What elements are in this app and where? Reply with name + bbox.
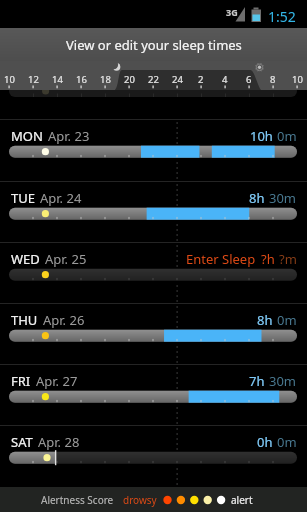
- staticText: WED: [11, 250, 40, 268]
- staticText: ?m: [279, 250, 297, 268]
- staticText: Alertness Score: [41, 493, 114, 507]
- staticText: 20: [124, 73, 135, 86]
- staticText: 7h: [249, 372, 265, 390]
- staticText: 22: [148, 73, 159, 86]
- staticText: 14: [52, 73, 63, 86]
- staticText: Apr. 27: [36, 372, 78, 390]
- staticText: drowsy: [123, 493, 157, 507]
- staticText: 8: [270, 73, 276, 86]
- staticText: 6: [246, 73, 252, 86]
- staticText: 2: [198, 73, 204, 86]
- staticText: 8h: [249, 189, 265, 207]
- staticText: 12: [28, 73, 39, 86]
- button[interactable]: WED: [0, 242, 307, 303]
- button[interactable]: SAT: [0, 425, 307, 486]
- staticText: View or edit your sleep times: [66, 36, 242, 54]
- button[interactable]: TUE: [0, 181, 307, 242]
- staticText: 1:52: [268, 7, 296, 26]
- staticText: THU: [11, 311, 38, 329]
- staticText: 0m: [277, 433, 297, 451]
- staticText: 0h: [257, 433, 273, 451]
- staticText: 10: [4, 73, 15, 86]
- staticText: MON: [11, 127, 43, 145]
- button[interactable]: Alertness Score: [0, 487, 307, 512]
- staticText: Apr. 28: [38, 433, 80, 451]
- button[interactable]: FRI: [0, 364, 307, 425]
- staticText: Apr. 26: [43, 311, 85, 329]
- staticText: 10: [292, 73, 303, 86]
- staticText: Enter Sleep: [186, 250, 256, 268]
- staticText: 30m: [269, 189, 297, 207]
- staticText: 10h: [250, 127, 273, 145]
- staticText: 8h: [257, 311, 273, 329]
- staticText: Apr. 24: [40, 189, 82, 207]
- staticText: 0m: [277, 311, 297, 329]
- staticText: Apr. 25: [45, 250, 87, 268]
- button[interactable]: MON: [0, 119, 307, 180]
- button[interactable]: THU: [0, 303, 307, 364]
- staticText: 3G: [226, 6, 238, 18]
- staticText: 18: [100, 73, 111, 86]
- staticText: TUE: [11, 189, 35, 207]
- staticText: ?h: [261, 250, 275, 268]
- staticText: 0m: [277, 127, 297, 145]
- staticText: 4: [222, 73, 228, 86]
- staticText: 16: [76, 73, 87, 86]
- staticText: FRI: [11, 372, 31, 390]
- staticText: 30m: [269, 372, 297, 390]
- staticText: Apr. 23: [48, 127, 90, 145]
- staticText: SAT: [11, 433, 33, 451]
- staticText: 24: [172, 73, 183, 86]
- staticText: alert: [231, 493, 253, 507]
- button[interactable]: View or edit your sleep times: [0, 28, 307, 61]
